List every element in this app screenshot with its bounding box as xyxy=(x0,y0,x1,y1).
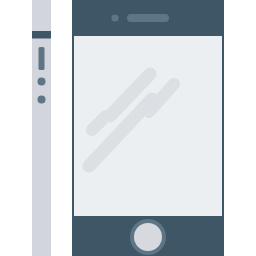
button[interactable]: Phone front view xyxy=(0,0,256,256)
button[interactable]: Phone side view xyxy=(0,0,256,256)
